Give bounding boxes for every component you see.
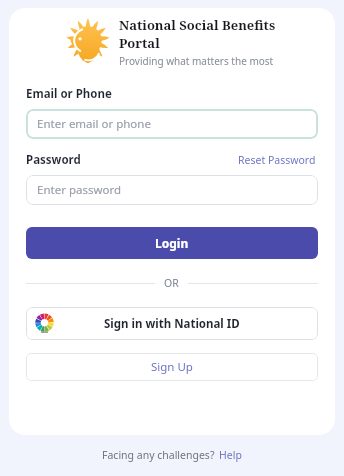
button[interactable]: Help [218,448,243,462]
staticText: Sign in with National ID [104,316,240,332]
button[interactable]: Sign Up [26,353,318,381]
button[interactable]: Password input [26,175,318,205]
staticText: National Social Benefits Portal [119,16,318,52]
staticText: Facing any challenges? [102,448,218,462]
button[interactable]: Reset Password [236,152,318,168]
staticText: Help [219,448,242,462]
staticText: Password [26,152,81,168]
staticText: Providing what matters the most [119,54,274,68]
staticText: OR [164,276,179,290]
button[interactable]: Login [26,227,318,259]
button[interactable]: Sign in with National ID [26,307,318,340]
staticText: Reset Password [238,153,316,167]
staticText: Enter password [37,182,122,198]
other: National ID [34,313,55,334]
staticText: Email or Phone [26,86,112,102]
other: National Social Benefits Portal logo [64,19,110,65]
staticText: Login [155,235,189,251]
staticText: Sign Up [151,359,193,375]
staticText: Enter email or phone [37,116,151,132]
button[interactable]: Email or Phone input [26,109,318,139]
